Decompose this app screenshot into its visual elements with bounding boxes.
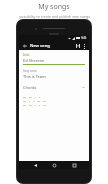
- staticText: Artist: [23, 53, 30, 57]
- staticText: Chords: [23, 85, 37, 90]
- staticText: Dm Am C G: [23, 95, 41, 98]
- staticText: possibility to create and publish own so…: [19, 14, 90, 19]
- staticText: Song name: [23, 69, 37, 73]
- button[interactable]: Recents: [70, 161, 78, 169]
- button[interactable]: Back: [31, 161, 39, 169]
- staticText: Ed Sheeran: [23, 58, 45, 63]
- button[interactable]: Home: [50, 161, 58, 169]
- button[interactable]: Back: [21, 42, 28, 49]
- staticText: New song: [30, 43, 50, 49]
- staticText: 9:46: [81, 36, 87, 40]
- button[interactable]: More options: [81, 43, 87, 49]
- staticText: Am C G Dm Am: [23, 99, 46, 102]
- staticText: My songs: [38, 2, 70, 12]
- button[interactable]: Chords: [23, 85, 85, 90]
- staticText: Dm Am C G Am: [23, 103, 46, 106]
- button[interactable]: Save: [74, 42, 81, 49]
- staticText: This is Team: [23, 74, 46, 79]
